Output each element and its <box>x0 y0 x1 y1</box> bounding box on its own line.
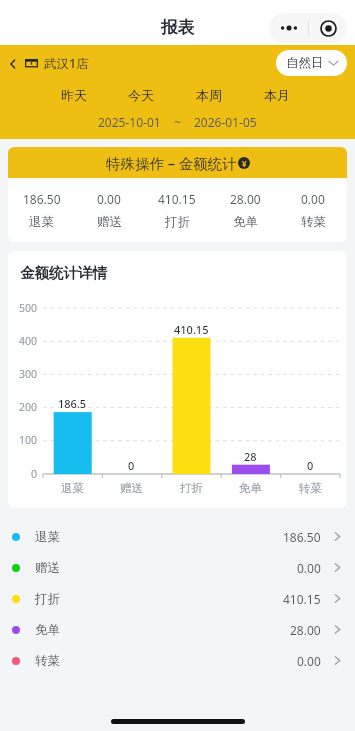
staticText: 410.15 <box>283 591 321 607</box>
staticText: 退菜 <box>29 214 54 230</box>
staticText: 0 <box>307 458 314 473</box>
button[interactable]: 自然日 <box>276 50 347 76</box>
button[interactable]: 0.00 <box>279 178 347 242</box>
button[interactable]: 退菜 <box>0 521 355 552</box>
staticText: 打折 <box>165 214 190 230</box>
button[interactable]: 28.00 <box>211 178 279 242</box>
button[interactable]: 打折 <box>0 583 355 614</box>
staticText: 今天 <box>128 87 154 103</box>
staticText: 赠送 <box>35 560 60 576</box>
staticText: 转菜 <box>299 481 322 495</box>
button[interactable]: 昨天 <box>40 81 107 108</box>
staticText: 200 <box>9 400 37 414</box>
staticText: 武汉1店 <box>44 55 89 72</box>
staticText: 500 <box>9 301 37 315</box>
staticText: 0 <box>128 458 135 473</box>
button[interactable]: 0.00 <box>75 178 143 242</box>
button[interactable]: 赠送 <box>0 552 355 583</box>
staticText: 报表 <box>161 17 194 38</box>
staticText: 转菜 <box>301 214 326 230</box>
button[interactable]: 186.50 <box>8 178 75 242</box>
staticText: 打折 <box>180 481 203 495</box>
staticText: ~ <box>174 114 181 130</box>
staticText: 410.15 <box>174 322 209 337</box>
staticText: 410.15 <box>158 191 196 207</box>
staticText: 0.00 <box>97 191 121 207</box>
staticText: 0.00 <box>301 191 325 207</box>
staticText: 打折 <box>35 591 60 607</box>
button[interactable]: 410.15 <box>143 178 211 242</box>
staticText: 赠送 <box>120 481 143 495</box>
button[interactable]: 武汉1店 <box>6 55 89 72</box>
staticText: 28.00 <box>230 191 261 207</box>
button[interactable]: 本周 <box>175 81 243 108</box>
staticText: 2025-10-01 <box>98 114 161 130</box>
staticText: 0.00 <box>297 560 321 576</box>
staticText: 免单 <box>233 214 258 230</box>
button[interactable]: 免单 <box>0 614 355 645</box>
staticText: 昨天 <box>61 87 87 103</box>
button[interactable]: Target <box>309 13 347 43</box>
staticText: 免单 <box>35 622 60 638</box>
button[interactable]: 2025-10-01 <box>98 114 257 130</box>
staticText: 186.5 <box>58 396 87 411</box>
staticText: 本月 <box>264 87 290 103</box>
staticText: 28.00 <box>290 622 321 638</box>
staticText: 金额统计详情 <box>20 264 107 282</box>
staticText: 300 <box>9 367 37 381</box>
staticText: 自然日 <box>286 55 324 71</box>
button[interactable]: Amount info <box>238 157 250 169</box>
staticText: 0 <box>9 467 37 481</box>
staticText: 400 <box>9 334 37 348</box>
staticText: 转菜 <box>35 653 60 669</box>
staticText: 免单 <box>239 481 262 495</box>
staticText: 2026-01-05 <box>194 114 257 130</box>
staticText: 退菜 <box>35 529 60 545</box>
button[interactable]: 转菜 <box>0 645 355 676</box>
staticText: 退菜 <box>61 481 84 495</box>
staticText: 本周 <box>196 87 222 103</box>
button[interactable]: 本月 <box>243 81 311 108</box>
staticText: 186.50 <box>283 529 321 545</box>
staticText: 赠送 <box>97 214 122 230</box>
staticText: ¥ <box>242 158 247 169</box>
button[interactable]: More <box>269 13 308 43</box>
staticText: 0.00 <box>297 653 321 669</box>
staticText: 186.50 <box>23 191 61 207</box>
button[interactable]: 今天 <box>107 81 175 108</box>
staticText: 28 <box>244 449 257 464</box>
staticText: 100 <box>9 433 37 447</box>
staticText: 特殊操作 – 金额统计 <box>106 153 237 173</box>
